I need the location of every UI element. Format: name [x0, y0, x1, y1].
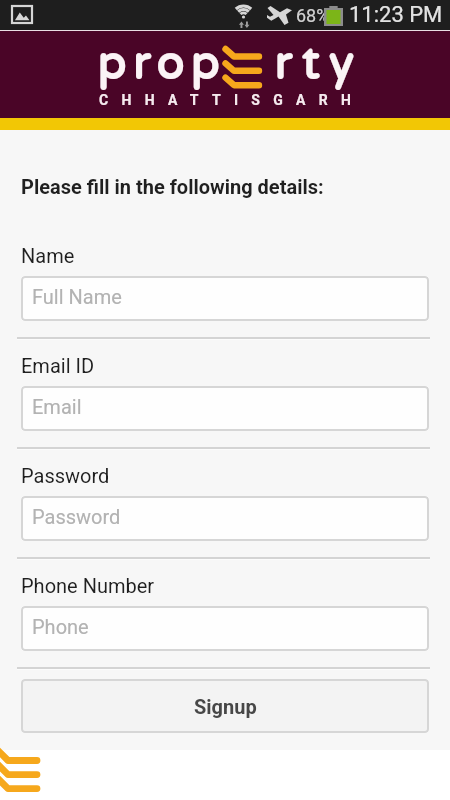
- button[interactable]: Signup: [21, 679, 429, 733]
- other: Screenshot captured: [11, 5, 33, 24]
- staticText: Email: [32, 395, 82, 418]
- staticText: CHHATTISGARH: [99, 92, 365, 108]
- staticText: Email ID: [21, 354, 95, 377]
- staticText: Please fill in the following details:: [21, 175, 324, 198]
- staticText: Full Name: [32, 285, 122, 308]
- staticText: 11:23 PM: [349, 2, 443, 28]
- other: Airplane mode on: [267, 6, 292, 25]
- staticText: Password: [32, 505, 121, 528]
- staticText: Phone: [32, 615, 89, 638]
- staticText: Password: [21, 464, 110, 487]
- staticText: Signup: [194, 695, 257, 718]
- button[interactable]: Password: [21, 496, 429, 541]
- button[interactable]: Full Name: [21, 276, 429, 321]
- button[interactable]: Email: [21, 386, 429, 431]
- staticText: Phone Number: [21, 574, 155, 597]
- staticText: Name: [21, 244, 75, 267]
- staticText: prop: [97, 38, 226, 92]
- staticText: rty: [274, 38, 363, 92]
- button[interactable]: Phone: [21, 606, 429, 651]
- staticText: 68%: [296, 5, 330, 26]
